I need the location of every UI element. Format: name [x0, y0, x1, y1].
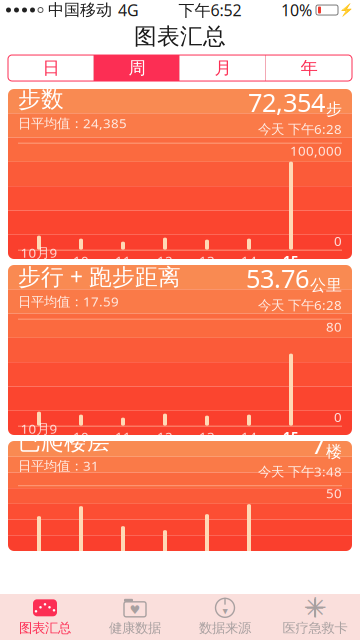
- staticText: 数据来源: [199, 620, 251, 636]
- staticText: 今天 下午3:48: [258, 462, 342, 480]
- staticText: 日平均值：17.59: [18, 292, 119, 310]
- staticText: 15: [283, 428, 299, 445]
- staticText: 72,354: [248, 85, 325, 119]
- button[interactable]: 月: [180, 55, 266, 81]
- staticText: 图表汇总: [19, 620, 71, 636]
- staticText: 周: [128, 57, 145, 79]
- staticText: 图表汇总: [134, 23, 226, 50]
- staticText: 10%: [281, 0, 312, 21]
- button[interactable]: 步数: [8, 89, 352, 259]
- staticText: 年: [300, 57, 317, 79]
- staticText: 中国移动: [48, 0, 112, 20]
- button[interactable]: 年: [266, 55, 352, 81]
- staticText: 14: [241, 252, 257, 269]
- staticText: 4G: [118, 0, 139, 21]
- button[interactable]: ♥: [90, 594, 180, 639]
- staticText: ▾: [222, 605, 227, 617]
- staticText: 12: [157, 428, 173, 445]
- staticText: 今天 下午6:28: [258, 296, 342, 314]
- staticText: 下午6:52: [178, 0, 241, 21]
- staticText: 今天 下午6:28: [258, 120, 342, 138]
- button[interactable]: 步行 + 跑步距离: [8, 265, 352, 435]
- button[interactable]: ✳: [270, 594, 360, 639]
- staticText: 13: [199, 428, 215, 445]
- staticText: 80: [326, 318, 342, 335]
- staticText: 步数: [18, 85, 64, 113]
- staticText: 日: [42, 57, 59, 79]
- staticText: 10月9日: [20, 420, 57, 454]
- staticText: 楼: [326, 442, 342, 461]
- staticText: 11: [115, 252, 131, 269]
- staticText: 53.76: [246, 261, 309, 295]
- staticText: 已爬楼层: [18, 428, 110, 456]
- staticText: 50: [326, 484, 342, 502]
- staticText: 13: [199, 252, 215, 269]
- staticText: 日平均值：24,385: [18, 114, 127, 132]
- staticText: ⚡: [339, 3, 354, 17]
- staticText: 日平均值：31: [18, 457, 99, 474]
- staticText: 步行 + 跑步距离: [18, 261, 181, 291]
- staticText: ♥: [129, 603, 140, 617]
- staticText: 0: [334, 408, 342, 426]
- staticText: 0: [334, 232, 342, 250]
- staticText: 月: [214, 57, 231, 79]
- staticText: ✳: [303, 592, 326, 624]
- staticText: 15: [283, 252, 299, 269]
- staticText: 100,000: [290, 142, 342, 159]
- staticText: 7: [311, 428, 325, 461]
- button[interactable]: 已爬楼层: [8, 441, 352, 551]
- staticText: 11: [115, 428, 131, 445]
- button[interactable]: 图表汇总: [0, 594, 90, 639]
- button[interactable]: 周: [94, 55, 180, 81]
- staticText: 10月9日: [20, 244, 57, 278]
- button[interactable]: 日: [8, 55, 94, 81]
- staticText: 医疗急救卡: [282, 620, 347, 636]
- staticText: 健康数据: [109, 620, 161, 636]
- staticText: 步: [326, 99, 342, 119]
- staticText: 10: [73, 428, 89, 445]
- staticText: 公里: [310, 275, 342, 295]
- button[interactable]: ▾: [180, 594, 270, 639]
- staticText: 14: [241, 428, 257, 445]
- staticText: 12: [157, 252, 173, 269]
- staticText: 10: [73, 252, 89, 269]
